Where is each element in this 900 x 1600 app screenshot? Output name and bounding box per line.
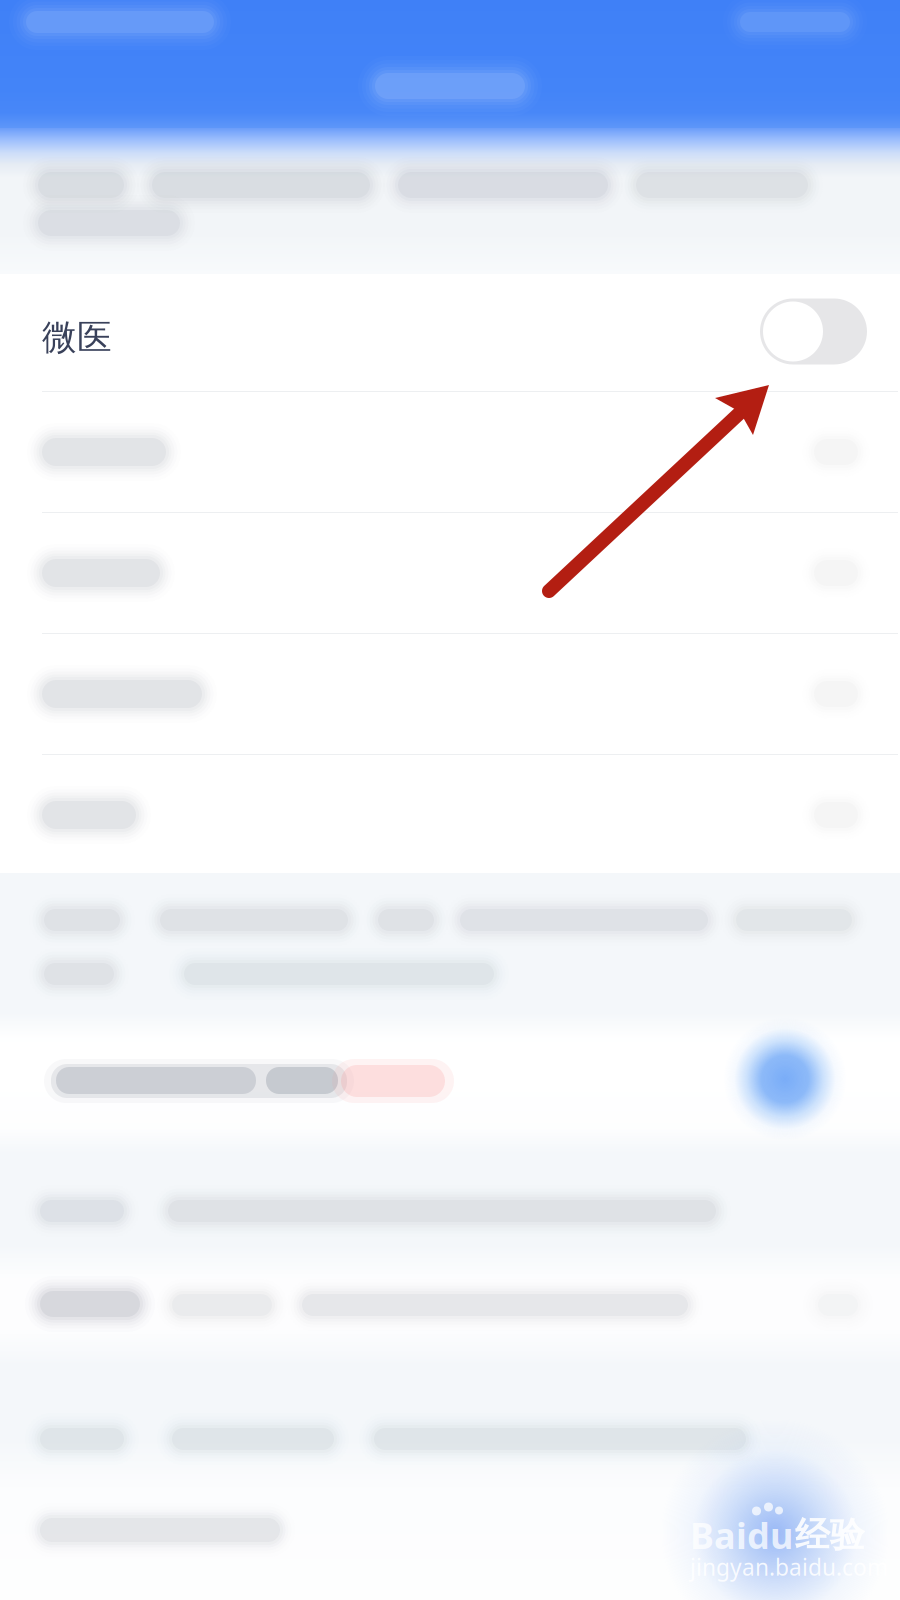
button[interactable] <box>0 513 900 633</box>
button[interactable] <box>0 755 900 875</box>
staticText: 经验 <box>795 1514 865 1556</box>
button[interactable] <box>0 392 900 512</box>
staticText: Baidu <box>690 1511 793 1559</box>
staticText: jingyan.baidu.com <box>690 1552 888 1582</box>
button[interactable]: 微医 <box>0 272 900 391</box>
button[interactable] <box>0 634 900 754</box>
staticText: 微医 <box>42 316 112 359</box>
